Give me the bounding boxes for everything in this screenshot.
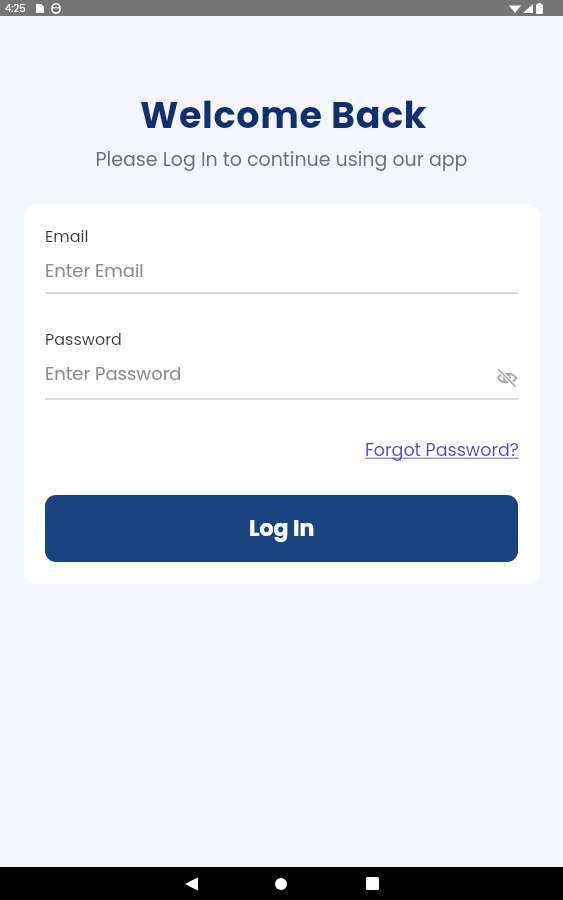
staticText: Please Log In to continue using our app — [0, 146, 563, 173]
staticText: Email — [45, 225, 89, 247]
staticText: 4:25 — [5, 1, 26, 15]
staticText: Password — [45, 328, 122, 350]
staticText: Welcome Back — [2, 90, 563, 141]
button[interactable]: Show password — [493, 364, 521, 392]
staticText: Enter Password — [45, 361, 182, 386]
button[interactable]: Recents — [327, 867, 417, 900]
button[interactable]: Back — [146, 867, 236, 900]
staticText: Enter Email — [45, 258, 144, 283]
button[interactable]: Home — [236, 867, 326, 900]
button[interactable]: Forgot Password? — [365, 438, 519, 463]
button[interactable]: Log In — [45, 495, 518, 562]
staticText: Log In — [249, 513, 315, 544]
